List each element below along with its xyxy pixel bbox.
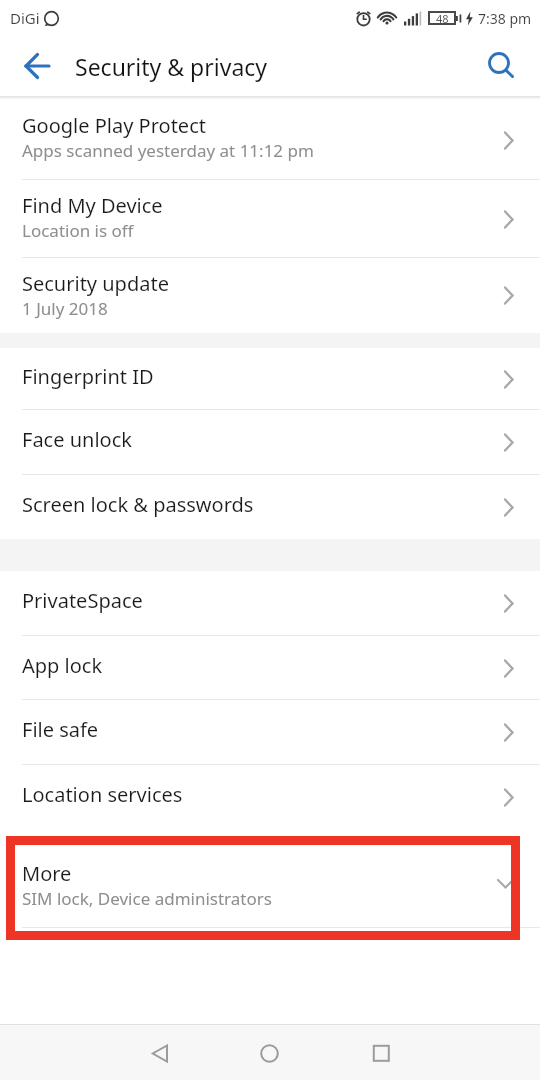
staticText: 48 (436, 11, 449, 25)
staticText: 1 July 2018 (22, 297, 108, 320)
staticText: Security update (22, 270, 169, 297)
staticText: Location is off (22, 219, 134, 242)
staticText: Apps scanned yesterday at 11:12 pm (22, 139, 314, 162)
staticText: DiGi (10, 8, 40, 28)
staticText: File safe (22, 716, 99, 743)
staticText: SIM lock, Device administrators (22, 887, 272, 910)
staticText: Fingerprint ID (22, 363, 154, 390)
staticText: Google Play Protect (22, 112, 206, 139)
staticText: Security & privacy (75, 51, 268, 82)
staticText: Find My Device (22, 192, 163, 219)
staticText: Screen lock & passwords (22, 491, 254, 518)
staticText: PrivateSpace (22, 587, 143, 614)
staticText: Face unlock (22, 426, 132, 453)
staticText: App lock (22, 652, 103, 679)
staticText: 7:38 pm (478, 9, 532, 28)
staticText: More (22, 860, 72, 887)
staticText: Location services (22, 781, 183, 808)
